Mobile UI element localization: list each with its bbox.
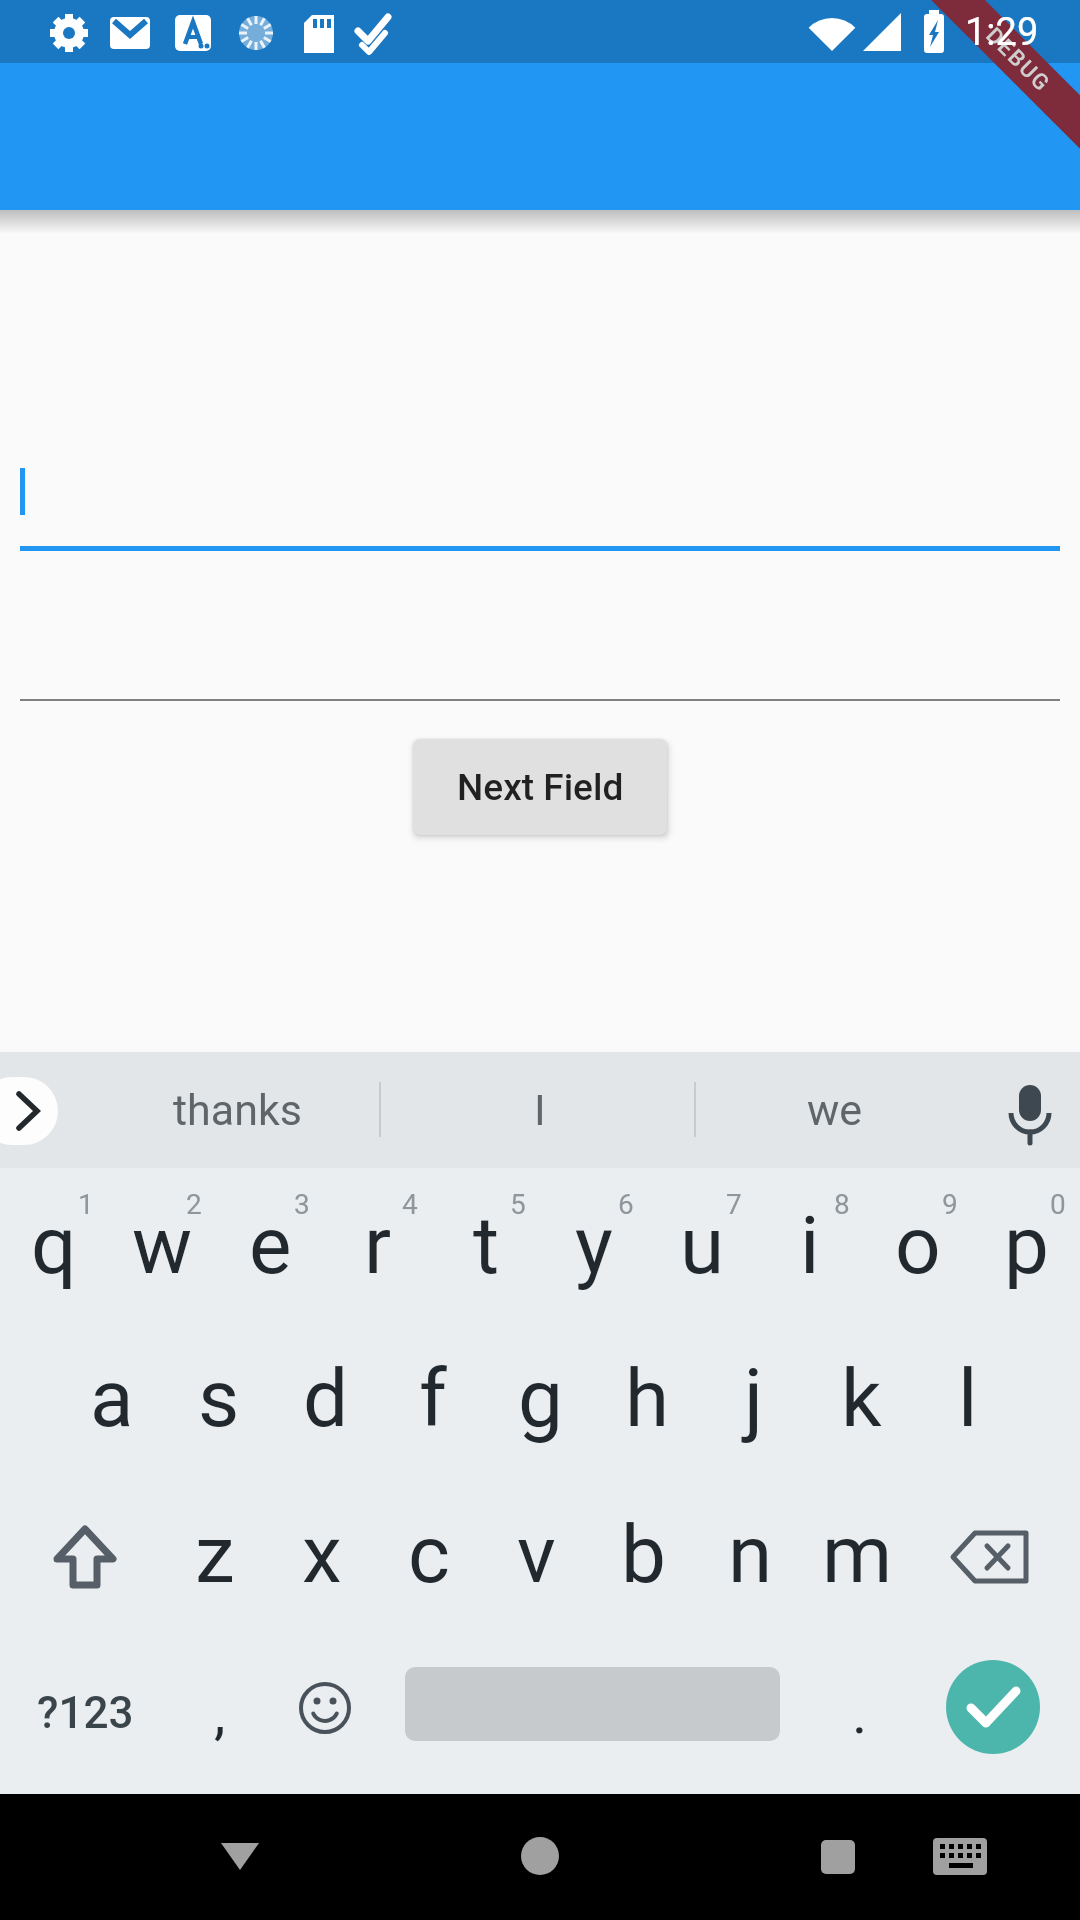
- staticText: 1: [78, 1188, 94, 1221]
- staticText: a: [90, 1352, 134, 1446]
- staticText: o: [895, 1199, 941, 1293]
- button[interactable]: d: [272, 1326, 380, 1471]
- staticText: f: [419, 1352, 447, 1446]
- staticText: 6: [618, 1188, 634, 1221]
- button[interactable]: [910, 1794, 1020, 1920]
- staticText: 5: [510, 1188, 526, 1221]
- button[interactable]: Next Field: [413, 739, 667, 835]
- button[interactable]: ,: [166, 1640, 274, 1785]
- staticText: x: [302, 1508, 342, 1602]
- staticText: 7: [726, 1188, 742, 1221]
- staticText: h: [625, 1352, 670, 1446]
- staticText: v: [517, 1508, 556, 1602]
- button[interactable]: I: [420, 1052, 660, 1168]
- staticText: we: [807, 1085, 863, 1135]
- button[interactable]: j: [700, 1326, 808, 1471]
- staticText: 3: [294, 1188, 310, 1221]
- staticText: q: [31, 1199, 77, 1293]
- staticText: z: [195, 1508, 235, 1602]
- staticText: 1:29: [965, 10, 1039, 55]
- staticText: .: [852, 1679, 868, 1747]
- button[interactable]: t: [432, 1172, 540, 1320]
- button[interactable]: [946, 1660, 1040, 1754]
- button[interactable]: x: [268, 1482, 376, 1627]
- button[interactable]: r: [324, 1172, 432, 1320]
- button[interactable]: y: [540, 1172, 648, 1320]
- button[interactable]: g: [486, 1326, 594, 1471]
- staticText: m: [822, 1508, 893, 1602]
- button[interactable]: c: [375, 1482, 483, 1627]
- staticText: u: [680, 1199, 725, 1293]
- staticText: p: [1004, 1199, 1049, 1293]
- staticText: l: [958, 1352, 978, 1446]
- button[interactable]: [271, 1640, 379, 1785]
- staticText: t: [473, 1199, 500, 1293]
- staticText: I: [534, 1085, 546, 1135]
- button[interactable]: [990, 1075, 1070, 1147]
- staticText: s: [198, 1352, 240, 1446]
- button[interactable]: v: [482, 1482, 590, 1627]
- button[interactable]: z: [161, 1482, 269, 1627]
- staticText: d: [303, 1352, 349, 1446]
- button[interactable]: f: [379, 1326, 487, 1471]
- button[interactable]: u: [648, 1172, 756, 1320]
- button[interactable]: h: [593, 1326, 701, 1471]
- staticText: n: [728, 1508, 773, 1602]
- staticText: 9: [942, 1188, 958, 1221]
- button[interactable]: [23, 1485, 148, 1630]
- button[interactable]: ?123: [25, 1640, 145, 1785]
- staticText: DEBUG: [980, 22, 1056, 98]
- staticText: b: [621, 1508, 666, 1602]
- staticText: g: [518, 1352, 563, 1446]
- staticText: y: [575, 1199, 613, 1293]
- staticText: 2: [186, 1188, 202, 1221]
- staticText: ,: [214, 1679, 226, 1747]
- staticText: j: [744, 1352, 764, 1446]
- button[interactable]: i: [756, 1172, 864, 1320]
- button[interactable]: [930, 1485, 1057, 1630]
- button[interactable]: m: [803, 1482, 911, 1627]
- button[interactable]: thanks: [110, 1052, 365, 1168]
- button[interactable]: .: [806, 1640, 914, 1785]
- button[interactable]: s: [165, 1326, 273, 1471]
- button[interactable]: [758, 1794, 918, 1920]
- button[interactable]: [460, 1794, 620, 1920]
- button[interactable]: a: [58, 1326, 166, 1471]
- button[interactable]: n: [696, 1482, 804, 1627]
- staticText: w: [132, 1199, 193, 1293]
- button[interactable]: b: [589, 1482, 697, 1627]
- button[interactable]: e: [216, 1172, 324, 1320]
- staticText: i: [800, 1199, 820, 1293]
- button[interactable]: k: [807, 1326, 915, 1471]
- button[interactable]: l: [914, 1326, 1022, 1471]
- staticText: Next Field: [457, 766, 624, 809]
- button[interactable]: o: [864, 1172, 972, 1320]
- staticText: k: [841, 1352, 882, 1446]
- staticText: thanks: [173, 1085, 302, 1135]
- button[interactable]: w: [108, 1172, 216, 1320]
- button[interactable]: p: [972, 1172, 1080, 1320]
- staticText: 8: [834, 1188, 850, 1221]
- staticText: 4: [402, 1188, 418, 1221]
- staticText: r: [364, 1199, 392, 1293]
- staticText: ?123: [37, 1687, 134, 1739]
- staticText: 0: [1050, 1188, 1066, 1221]
- button[interactable]: [160, 1794, 320, 1920]
- staticText: c: [408, 1508, 450, 1602]
- button[interactable]: q: [0, 1172, 108, 1320]
- button[interactable]: [0, 1077, 58, 1145]
- button[interactable]: we: [730, 1052, 940, 1168]
- staticText: e: [249, 1199, 292, 1293]
